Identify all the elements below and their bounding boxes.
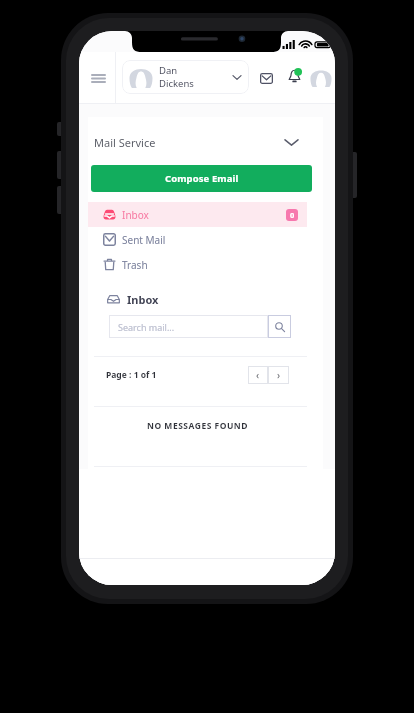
staticText: 0 bbox=[290, 210, 295, 220]
button[interactable]: Search mail... bbox=[109, 315, 268, 338]
staticText: Dan bbox=[159, 64, 178, 77]
staticText: ‹ bbox=[256, 368, 260, 382]
staticText: Search mail... bbox=[118, 321, 175, 333]
other: Expand bbox=[285, 139, 298, 146]
button[interactable]: Next page bbox=[268, 366, 289, 384]
staticText: Trash bbox=[122, 258, 148, 272]
staticText: Page : 1 of 1 bbox=[106, 369, 157, 381]
button[interactable]: Trash bbox=[88, 252, 307, 277]
button[interactable]: Mail bbox=[254, 66, 278, 90]
staticText: Sent Mail bbox=[122, 233, 166, 247]
button[interactable]: Profile bbox=[308, 65, 333, 90]
button[interactable]: Inbox bbox=[88, 202, 307, 227]
staticText: Dickens bbox=[159, 77, 194, 90]
button[interactable]: Notifications bbox=[282, 64, 306, 88]
button[interactable]: Compose Email bbox=[91, 165, 312, 192]
staticText: Inbox bbox=[122, 208, 149, 222]
staticText: Compose Email bbox=[165, 172, 239, 185]
button[interactable]: Menu bbox=[81, 52, 115, 104]
button[interactable]: Sent Mail bbox=[88, 227, 307, 252]
staticText: Inbox bbox=[127, 292, 159, 307]
staticText: Mail Service bbox=[94, 135, 156, 150]
button[interactable]: Previous page bbox=[248, 366, 268, 384]
button[interactable]: Mail Service bbox=[94, 131, 298, 153]
staticText: › bbox=[277, 368, 281, 382]
button[interactable]: Search bbox=[268, 315, 291, 338]
button[interactable]: Dan bbox=[122, 60, 249, 94]
staticText: NO MESSAGES FOUND bbox=[88, 420, 307, 432]
